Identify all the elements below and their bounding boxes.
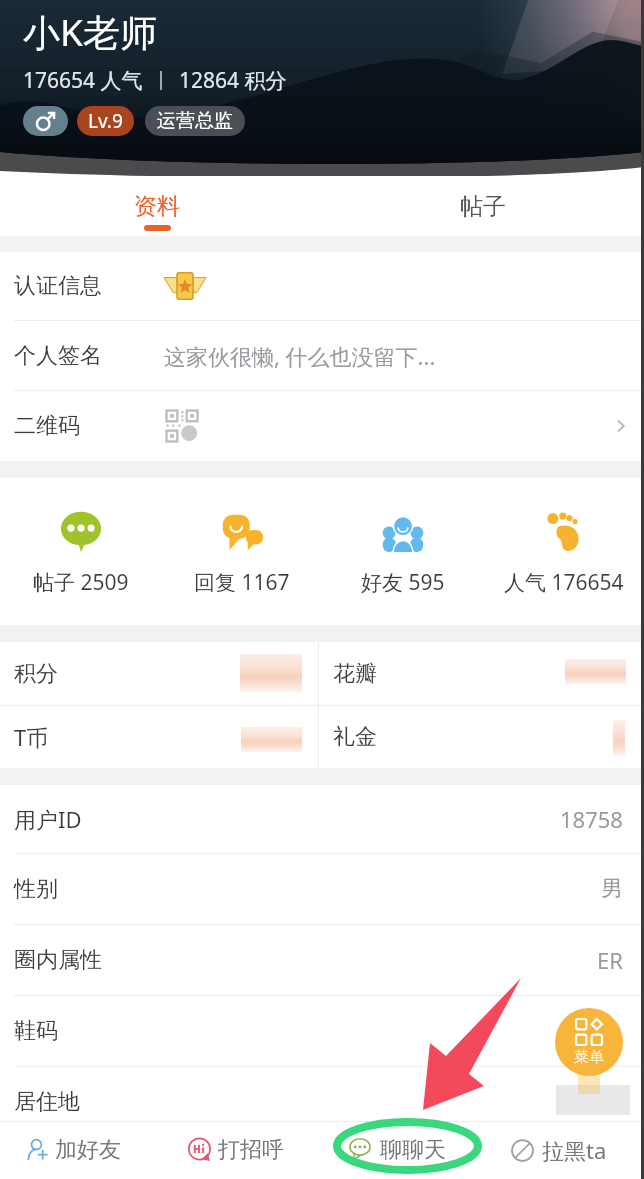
button[interactable]: 帖子 2509	[0, 478, 161, 625]
button[interactable]: 居住地	[0, 1067, 644, 1137]
button[interactable]: 积分	[0, 642, 318, 705]
button[interactable]: 人气 176654	[483, 478, 644, 625]
button[interactable]: 运营总监	[145, 106, 245, 136]
button[interactable]: 帖子	[322, 176, 644, 236]
staticText: 帖子 2509	[33, 568, 129, 597]
button[interactable]: 拉黑ta	[503, 1121, 614, 1179]
staticText: 回复 1167	[194, 568, 290, 597]
staticText: 花瓣	[333, 660, 377, 688]
staticText: 帖子	[460, 192, 506, 221]
button[interactable]: 鞋码	[0, 996, 644, 1066]
staticText: 加好友	[55, 1136, 121, 1164]
staticText: 人气 176654	[504, 568, 624, 597]
button[interactable]: 花瓣	[319, 642, 644, 705]
button[interactable]: 打招呼	[180, 1121, 291, 1179]
button[interactable]: 好友 595	[322, 478, 483, 625]
button[interactable]: 认证信息	[0, 252, 644, 320]
staticText: 拉黑ta	[542, 1135, 607, 1165]
staticText: 认证信息	[14, 272, 164, 300]
staticText: 个人签名	[14, 342, 164, 370]
staticText: 鞋码	[14, 1017, 58, 1045]
staticText: 资料	[134, 192, 180, 221]
button[interactable]: 聊聊天	[339, 1121, 453, 1179]
button[interactable]: 性别 男	[23, 106, 68, 136]
staticText: 聊聊天	[380, 1136, 446, 1164]
button[interactable]: 礼金	[319, 706, 644, 768]
staticText: T币	[14, 722, 49, 752]
button[interactable]: Lv.9	[77, 106, 134, 136]
staticText: 积分	[14, 660, 58, 688]
button[interactable]: T币	[0, 706, 318, 768]
staticText: 小K老师	[23, 6, 157, 57]
staticText: 打招呼	[218, 1136, 284, 1164]
staticText: 男	[601, 875, 623, 903]
staticText: 18758	[560, 804, 623, 834]
button[interactable]: 菜单	[555, 1008, 623, 1076]
staticText: Lv.9	[88, 108, 123, 134]
button[interactable]: 个人签名	[0, 321, 644, 390]
staticText: ER	[597, 945, 623, 975]
staticText: 176654 人气	[23, 66, 143, 95]
staticText: 菜单	[574, 1048, 604, 1067]
staticText: 居住地	[14, 1088, 80, 1116]
button[interactable]: 用户ID	[0, 785, 644, 853]
staticText: 12864 积分	[179, 66, 287, 95]
button[interactable]: 加好友	[18, 1121, 128, 1179]
staticText: 这家伙很懒, 什么也没留下...	[164, 341, 436, 371]
staticText: 二维码	[14, 412, 164, 440]
staticText: 用户ID	[14, 804, 82, 834]
button[interactable]: 回复 1167	[161, 478, 322, 625]
button[interactable]: 资料	[0, 176, 322, 236]
staticText: 圈内属性	[14, 946, 102, 974]
staticText: 性别	[14, 875, 58, 903]
staticText: 礼金	[333, 723, 377, 751]
staticText: 好友 595	[361, 568, 445, 597]
button[interactable]: 二维码	[0, 391, 644, 461]
button[interactable]: 性别	[0, 854, 644, 924]
button[interactable]: 圈内属性	[0, 925, 644, 995]
staticText: 运营总监	[157, 109, 233, 133]
